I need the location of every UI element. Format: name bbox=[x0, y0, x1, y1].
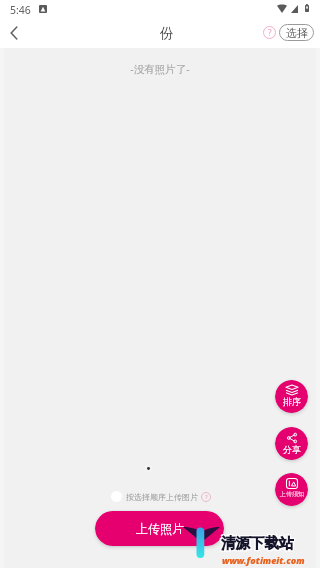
button[interactable]: Upload notice bbox=[275, 473, 308, 506]
button[interactable]: 上传照片 bbox=[95, 511, 224, 546]
staticText: www.fotimeit.com bbox=[222, 554, 305, 566]
staticText: 清源下载站 bbox=[221, 534, 294, 552]
staticText: 分享 bbox=[283, 444, 301, 455]
button[interactable]: 按选择顺序上传图片 bbox=[111, 491, 211, 502]
staticText: ? bbox=[268, 27, 272, 38]
staticText: 选择 bbox=[286, 26, 308, 40]
staticText: 5:46 bbox=[10, 3, 31, 17]
staticText: 上传照片 bbox=[136, 521, 184, 536]
button[interactable]: Back bbox=[2, 18, 26, 48]
staticText: 排序 bbox=[283, 396, 301, 407]
staticText: 清源下载站 bbox=[222, 535, 295, 553]
staticText: 份 bbox=[160, 25, 174, 42]
staticText: 清源下载站 bbox=[222, 533, 295, 551]
staticText: 清源下载站 bbox=[220, 533, 293, 551]
button[interactable]: Help bbox=[263, 26, 276, 39]
button[interactable]: 选择 bbox=[279, 24, 314, 41]
staticText: -没有照片了- bbox=[0, 62, 320, 76]
staticText: 清源下载站 bbox=[220, 535, 293, 553]
button[interactable]: Share bbox=[275, 427, 308, 460]
button[interactable]: Sort bbox=[275, 380, 308, 413]
staticText: 上传须知 bbox=[280, 490, 304, 498]
staticText: ? bbox=[205, 493, 208, 501]
staticText: 按选择顺序上传图片 bbox=[126, 492, 198, 502]
